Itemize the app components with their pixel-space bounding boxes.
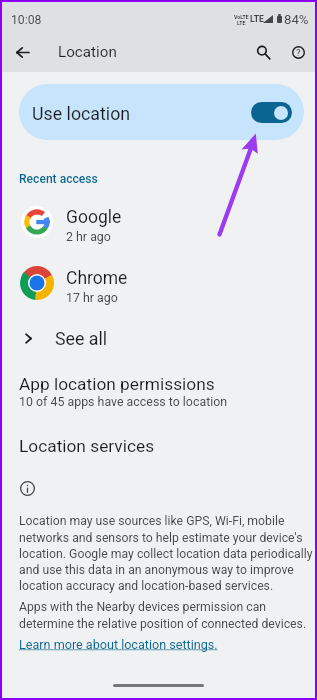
button[interactable]: See all <box>2 323 315 353</box>
button[interactable] <box>2 200 315 245</box>
button[interactable]: Back <box>7 37 37 67</box>
staticText: ? <box>296 47 301 58</box>
staticText: LTE <box>250 14 264 24</box>
button[interactable]: Search <box>248 37 278 67</box>
staticText: Apps with the Nearby devices permission … <box>19 600 317 631</box>
staticText: Google <box>66 207 122 228</box>
button[interactable] <box>2 261 315 306</box>
button[interactable]: Use location <box>19 84 304 140</box>
staticText: Location services <box>19 436 155 456</box>
staticText: Use location <box>32 103 131 124</box>
staticText: Learn more about location settings. <box>19 637 218 652</box>
staticText: Recent access <box>19 172 98 186</box>
button[interactable] <box>2 372 315 412</box>
button[interactable]: Help <box>283 37 313 67</box>
staticText: See all <box>55 328 108 349</box>
staticText: 10 of 45 apps have access to location <box>19 394 228 409</box>
button[interactable] <box>19 637 199 655</box>
staticText: 17 hr ago <box>66 290 118 305</box>
staticText: LTE <box>237 20 246 26</box>
staticText: 2 hr ago <box>66 229 111 244</box>
staticText: VoLTE <box>234 14 249 20</box>
staticText: Location <box>58 43 117 61</box>
staticText: 10:08 <box>11 13 42 27</box>
staticText: Chrome <box>66 268 128 289</box>
staticText: 84% <box>284 12 309 27</box>
staticText: Location may use sources like GPS, Wi-Fi… <box>19 514 317 593</box>
staticText: App location permissions <box>19 374 215 394</box>
